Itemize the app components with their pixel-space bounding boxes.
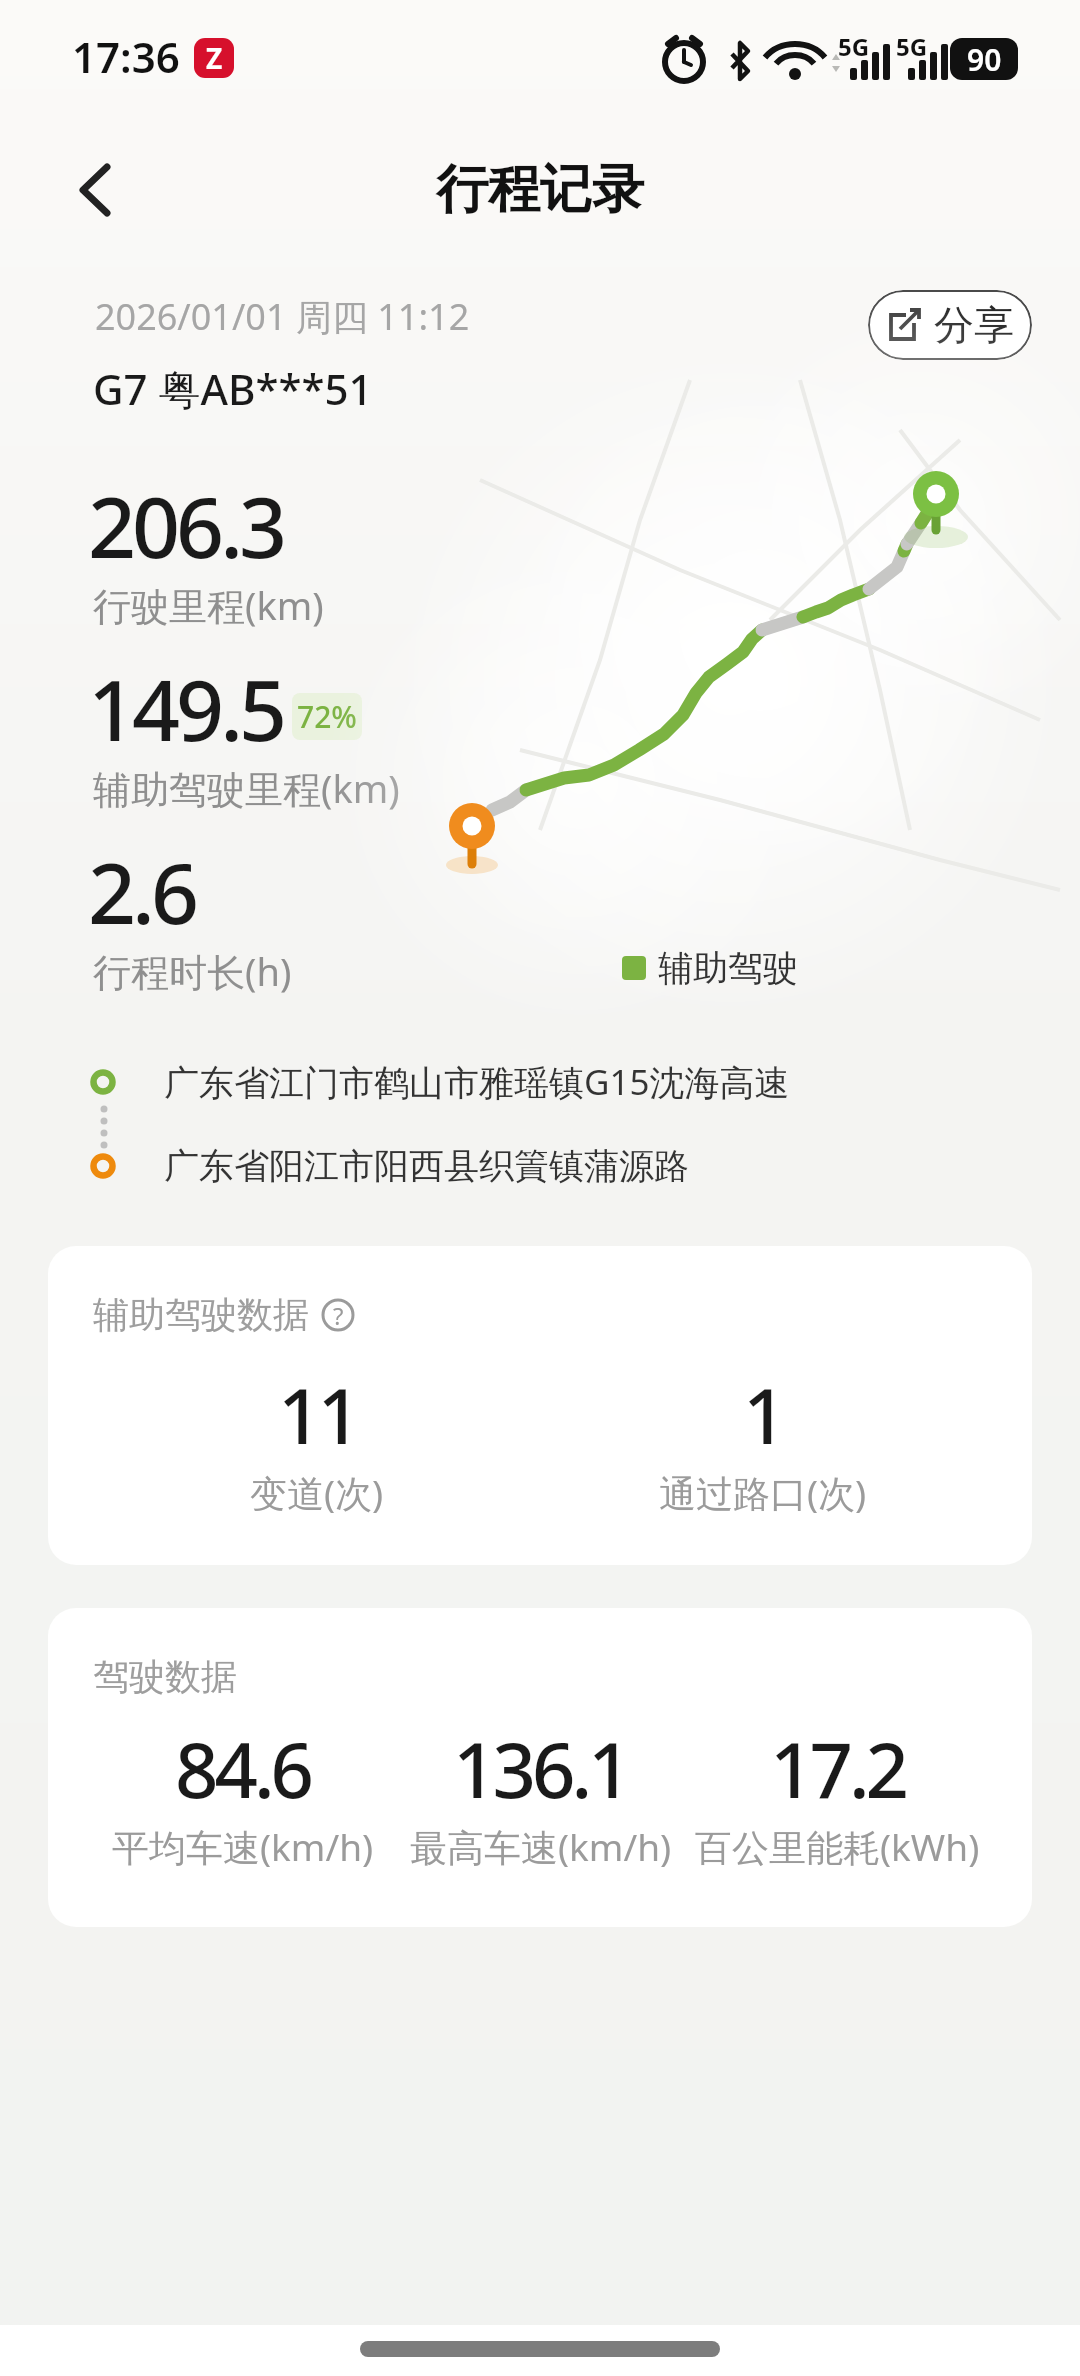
button[interactable]: ?	[321, 1298, 355, 1332]
staticText: 2.6	[88, 834, 195, 948]
staticText: 行程记录	[436, 157, 644, 223]
staticText: 广东省阳江市阳西县织篢镇蒲源路	[164, 1144, 689, 1188]
button[interactable]: 分享	[868, 290, 1032, 360]
staticText: 行驶里程(km)	[93, 579, 324, 631]
staticText: 驾驶数据	[93, 1654, 237, 1699]
staticText: 辅助驾驶里程(km)	[93, 762, 400, 814]
staticText: 5G	[896, 30, 928, 63]
staticText: 84.6	[175, 1717, 311, 1821]
staticText: 广东省江门市鹤山市雅瑶镇G15沈海高速	[164, 1058, 790, 1106]
staticText: 11	[278, 1363, 357, 1467]
staticText: 2026/01/01 周四 11:12	[95, 292, 470, 341]
staticText: 行程时长(h)	[93, 945, 292, 997]
staticText: Z	[206, 39, 223, 77]
staticText: 百公里能耗(kWh)	[695, 1821, 980, 1872]
staticText: 136.1	[453, 1717, 628, 1821]
staticText: 72%	[297, 696, 357, 737]
staticText: 17.2	[770, 1717, 906, 1821]
button[interactable]	[75, 165, 119, 215]
staticText: 1	[743, 1363, 783, 1467]
staticText: 最高车速(km/h)	[410, 1821, 672, 1872]
staticText: 5G	[838, 30, 870, 63]
staticText: G7 粤AB***51	[93, 360, 373, 417]
staticText: ?	[333, 1299, 344, 1332]
staticText: 平均车速(km/h)	[112, 1821, 374, 1872]
staticText: 206.3	[88, 468, 284, 582]
staticText: 辅助驾驶数据	[93, 1292, 309, 1337]
staticText: 通过路口(次)	[659, 1467, 867, 1518]
staticText: 分享	[934, 300, 1014, 350]
staticText: 149.5	[88, 651, 284, 765]
staticText: 17:36	[72, 28, 180, 85]
staticText: 辅助驾驶	[658, 946, 798, 990]
staticText: 90	[967, 39, 1002, 80]
staticText: 变道(次)	[250, 1467, 384, 1518]
